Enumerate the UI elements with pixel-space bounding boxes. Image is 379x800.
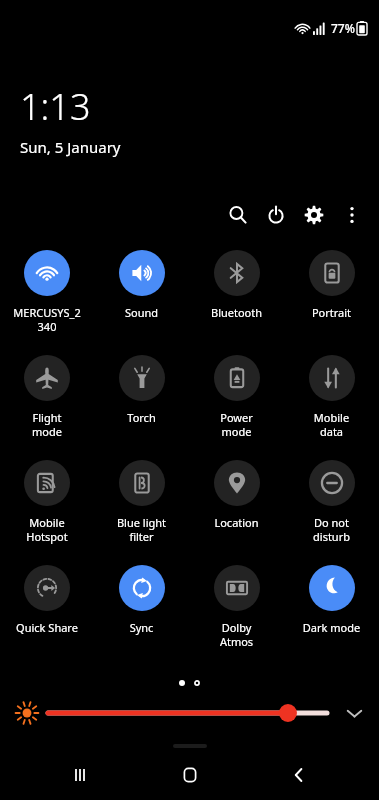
staticText: Bluetooth xyxy=(191,305,282,320)
staticText: Mobile Hotspot xyxy=(2,515,92,544)
staticText: 1:13 xyxy=(20,82,91,131)
staticText: 77% xyxy=(331,20,355,36)
staticText: Quick Share xyxy=(2,620,92,635)
button[interactable]: Location xyxy=(189,460,284,565)
button[interactable]: More options xyxy=(333,196,371,234)
staticText: Dolby Atmos xyxy=(191,620,282,649)
button[interactable]: Blue light filter xyxy=(94,460,189,565)
button[interactable]: Flight mode xyxy=(0,355,94,460)
button[interactable]: Recents xyxy=(50,750,110,800)
staticText: Portrait xyxy=(286,305,377,320)
staticText: Sun, 5 January xyxy=(20,137,121,157)
button[interactable]: Torch xyxy=(94,355,189,460)
staticText: Do not disturb xyxy=(286,515,377,544)
button[interactable]: Mobile data xyxy=(284,355,379,460)
staticText: Blue light filter xyxy=(96,515,187,544)
staticText: Sound xyxy=(96,305,187,320)
staticText: Flight mode xyxy=(2,410,92,439)
staticText: Location xyxy=(191,515,282,530)
staticText: Mobile data xyxy=(286,410,377,439)
button[interactable]: Sync xyxy=(94,565,189,670)
button[interactable]: Power xyxy=(257,196,295,234)
button[interactable]: Search xyxy=(219,196,257,234)
button[interactable]: Home xyxy=(160,750,220,800)
staticText: Power mode xyxy=(191,410,282,439)
button[interactable]: Expand xyxy=(337,696,371,730)
button[interactable]: Bluetooth xyxy=(189,250,284,355)
button[interactable]: Dolby Atmos xyxy=(189,565,284,670)
staticText: Dark mode xyxy=(286,620,377,635)
staticText: Torch xyxy=(96,410,187,425)
button[interactable]: Mobile Hotspot xyxy=(0,460,94,565)
staticText: MERCUSYS_2 340 xyxy=(2,305,92,334)
staticText: Sync xyxy=(96,620,187,635)
button[interactable]: Portrait xyxy=(284,250,379,355)
button[interactable]: Do not disturb xyxy=(284,460,379,565)
button[interactable]: Quick Share xyxy=(0,565,94,670)
button[interactable]: Back xyxy=(269,750,329,800)
button[interactable]: Sound xyxy=(94,250,189,355)
button[interactable]: MERCUSYS_2 340 xyxy=(0,250,94,355)
button[interactable]: Brightness xyxy=(48,700,327,726)
button[interactable]: Settings xyxy=(295,196,333,234)
button[interactable]: Power mode xyxy=(189,355,284,460)
button[interactable]: Dark mode xyxy=(284,565,379,670)
